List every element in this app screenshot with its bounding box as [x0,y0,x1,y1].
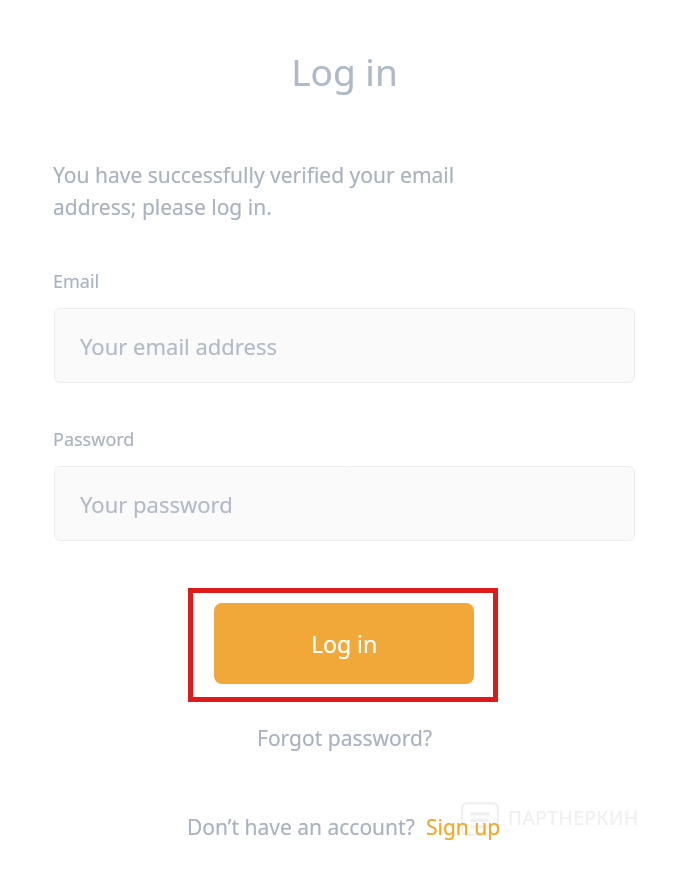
staticText: Email [53,269,100,294]
staticText: Log in [311,628,378,659]
button[interactable]: Log in [214,603,474,684]
staticText: Your email address [80,331,277,361]
button[interactable]: Forgot password? [249,719,441,758]
button[interactable]: Your email address [54,308,635,383]
staticText: Password [53,427,135,452]
staticText: You have successfully verified your emai… [53,161,613,221]
staticText: Log in [0,46,689,96]
staticText: ПАРТНЕРКИН [508,805,639,831]
button[interactable]: Your password [54,466,635,541]
staticText: Your password [80,489,233,519]
staticText: Don’t have an account? [187,813,415,842]
button[interactable]: Sign up [424,810,503,845]
staticText: Sign up [426,813,501,842]
staticText: Forgot password? [257,724,433,753]
